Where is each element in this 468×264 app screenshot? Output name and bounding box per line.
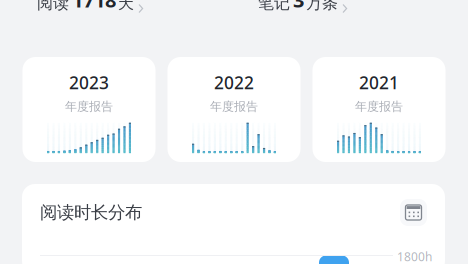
button[interactable]: 阅读 <box>37 0 144 13</box>
button[interactable]: 2021 <box>312 57 445 162</box>
staticText: 年度报告 <box>355 99 403 114</box>
button[interactable]: 选择日期 <box>400 199 427 226</box>
staticText: 万条 <box>306 0 338 13</box>
button[interactable]: 2023 <box>22 57 155 162</box>
button[interactable]: 笔记 <box>258 0 348 13</box>
button[interactable]: 2022 <box>167 57 300 162</box>
staticText: 年度报告 <box>65 99 113 114</box>
staticText: 3 <box>293 0 304 13</box>
staticText: 阅读时长分布 <box>40 202 142 223</box>
staticText: 天 <box>118 0 134 13</box>
staticText: 笔记 <box>258 0 290 13</box>
staticText: 2021 <box>359 71 399 94</box>
staticText: 年度报告 <box>210 99 258 114</box>
staticText: 2023 <box>69 71 109 94</box>
staticText: 1718 <box>72 0 116 13</box>
staticText: 2022 <box>214 71 254 94</box>
staticText: 阅读 <box>37 0 69 13</box>
staticText: 1800h <box>397 248 432 264</box>
